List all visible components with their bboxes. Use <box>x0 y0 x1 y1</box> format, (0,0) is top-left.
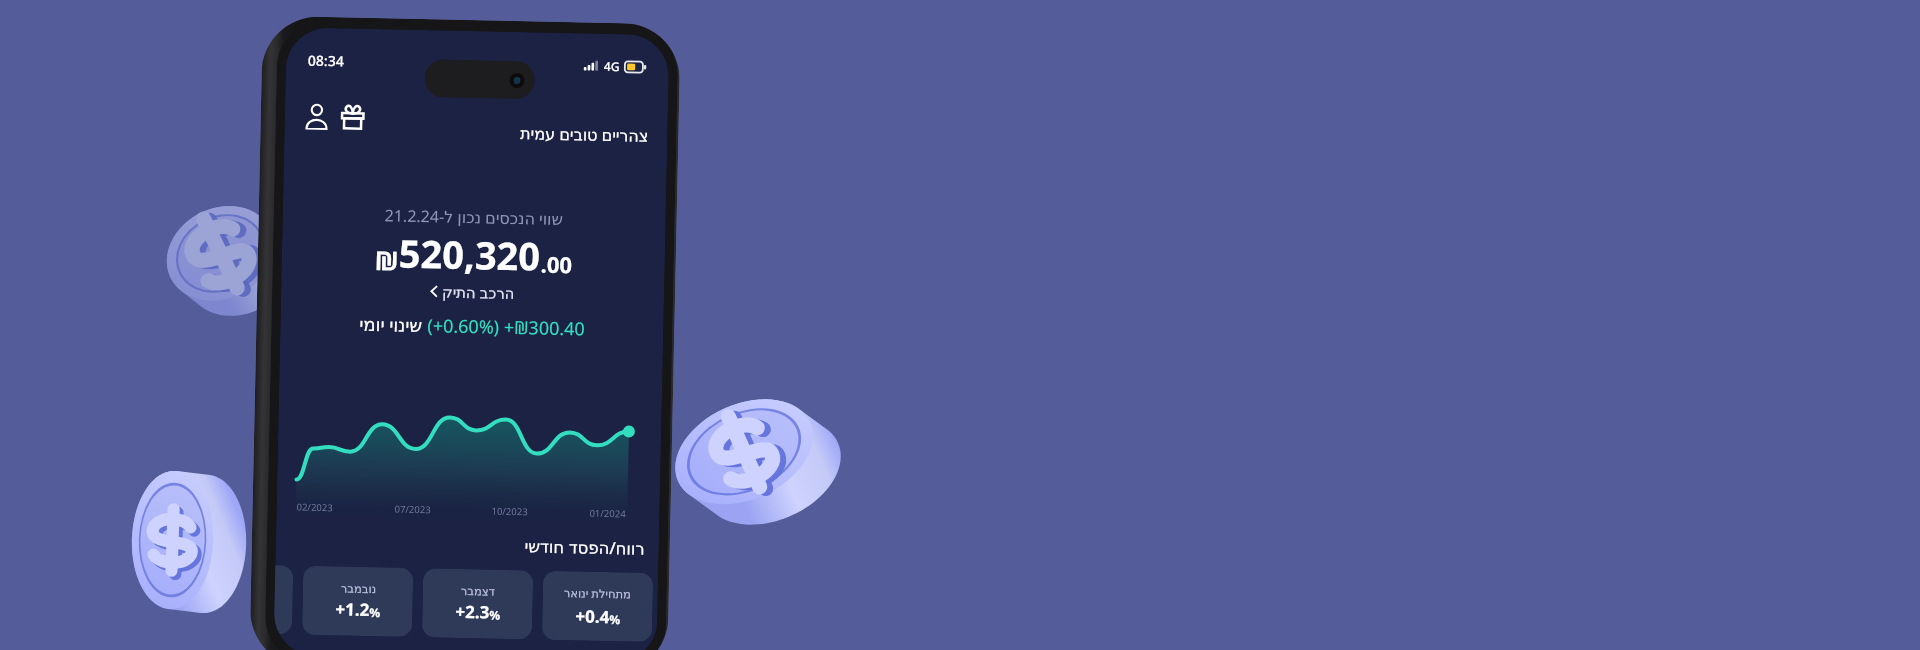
staticText: % <box>609 611 620 627</box>
staticText: .00 <box>540 249 573 279</box>
staticText: מתחילת ינואר <box>564 585 632 602</box>
staticText: +0.4 <box>575 604 610 628</box>
staticText: שינוי יומי <box>359 312 428 338</box>
button[interactable]: נובמבר <box>302 566 413 637</box>
staticText: 520,320 <box>398 227 541 282</box>
staticText: 08:34 <box>308 51 344 70</box>
staticText: רווח/הפסד חודשי <box>276 529 645 559</box>
button[interactable]: אוקטובר <box>274 565 293 634</box>
staticText: דצמבר <box>461 584 496 598</box>
button[interactable]: Profile <box>305 104 328 130</box>
staticText: הרכב התיק <box>442 281 515 303</box>
staticText: 01/2024 <box>589 507 627 520</box>
staticText: צהריים טובים עמית <box>519 122 649 147</box>
staticText: שווי הנכסים נכון ל-21.2.24 <box>384 204 564 230</box>
staticText: % <box>369 604 380 620</box>
button[interactable]: הרכב התיק <box>430 281 515 303</box>
staticText: % <box>489 607 500 623</box>
staticText: 02/2023 <box>296 500 334 514</box>
staticText: +1.2 <box>335 597 370 621</box>
staticText: +2.3 <box>455 600 490 624</box>
staticText: 07/2023 <box>394 503 432 516</box>
staticText: 4G <box>604 58 620 74</box>
staticText: 10/2023 <box>491 505 529 518</box>
button[interactable]: דצמבר <box>422 568 533 639</box>
button[interactable]: Gifts <box>340 104 365 131</box>
staticText: נובמבר <box>341 581 377 595</box>
staticText: ₪ <box>374 242 399 278</box>
button[interactable]: מתחילת ינואר <box>542 571 653 642</box>
staticText: (+0.60%) +₪300.40 <box>427 313 586 341</box>
